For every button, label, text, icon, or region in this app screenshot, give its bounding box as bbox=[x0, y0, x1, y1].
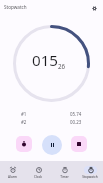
staticText: #1 bbox=[21, 111, 27, 117]
button[interactable]: Clock bbox=[25, 165, 51, 179]
staticText: Stopwatch bbox=[4, 4, 27, 10]
staticText: 05.74 bbox=[70, 111, 82, 117]
staticText: #2 bbox=[21, 119, 27, 125]
staticText: 015 bbox=[32, 50, 59, 71]
button[interactable]: Reset bbox=[71, 136, 87, 152]
staticText: Timer bbox=[60, 175, 69, 179]
button[interactable]: Pause bbox=[42, 135, 62, 155]
button[interactable]: Lap bbox=[16, 136, 32, 152]
button[interactable]: Alarm bbox=[0, 165, 25, 179]
staticText: 26 bbox=[58, 62, 66, 70]
button[interactable]: Settings bbox=[88, 2, 100, 14]
staticText: Stopwatch bbox=[82, 175, 98, 179]
button[interactable]: Stopwatch bbox=[77, 165, 103, 179]
button[interactable]: Timer bbox=[51, 165, 77, 179]
staticText: Alarm bbox=[8, 175, 17, 179]
staticText: 00.23 bbox=[70, 119, 82, 125]
staticText: Clock bbox=[34, 175, 42, 179]
